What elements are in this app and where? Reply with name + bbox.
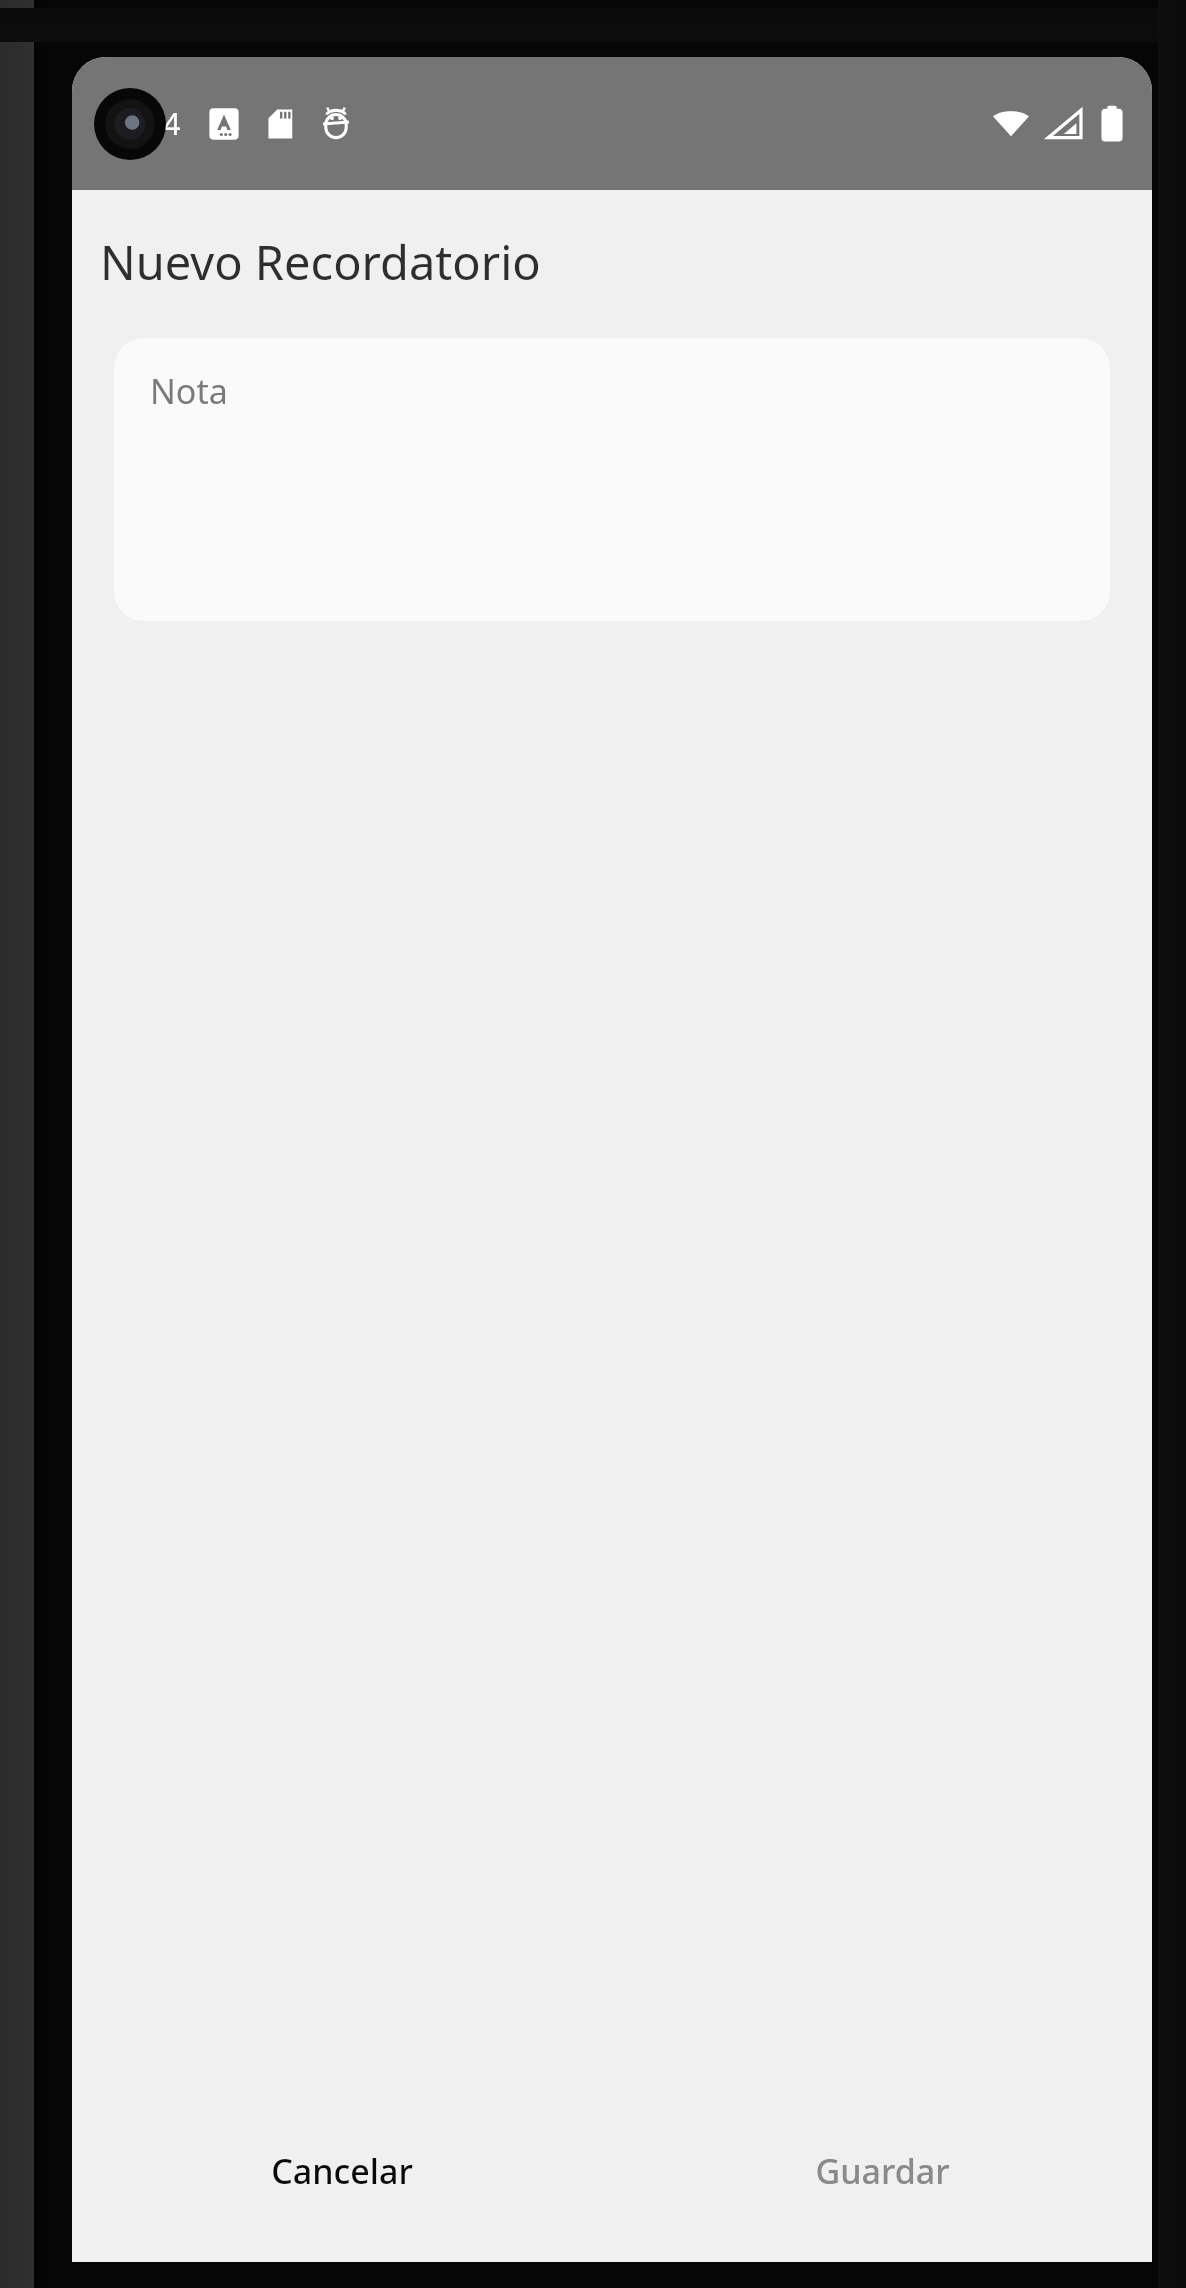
button[interactable]: Nota [114,338,1110,621]
staticText: Nota [150,368,228,414]
button[interactable]: Guardar [612,2116,1152,2226]
button[interactable]: Cancelar [72,2116,612,2226]
staticText: Cancelar [271,2148,413,2194]
staticText: Nuevo Recordatorio [100,230,541,294]
staticText: 14 [146,103,181,144]
staticText: Guardar [815,2148,950,2194]
